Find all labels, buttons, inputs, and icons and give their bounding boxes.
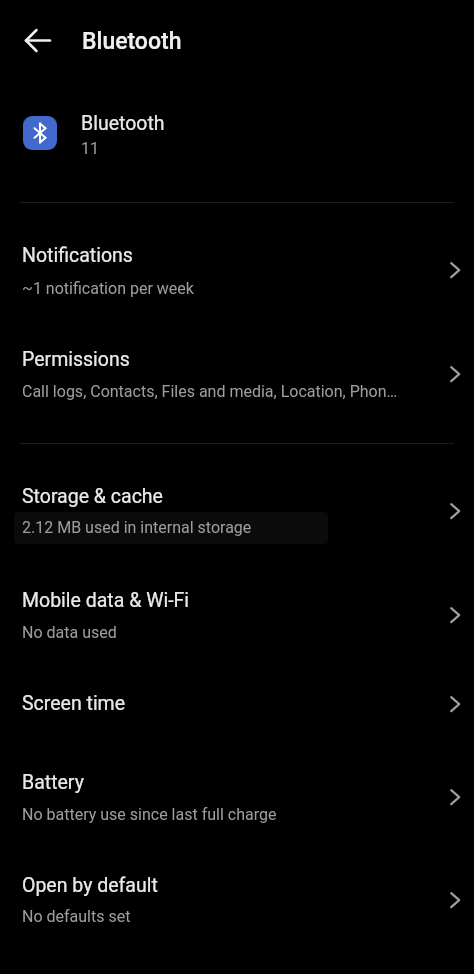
button[interactable]: Screen time xyxy=(0,674,474,740)
staticText: 11 xyxy=(81,139,99,158)
staticText: ~1 notification per week xyxy=(22,279,194,298)
button[interactable]: Notifications xyxy=(0,226,474,330)
staticText: Storage & cache xyxy=(22,485,163,508)
staticText: No data used xyxy=(22,623,117,642)
staticText: Call logs, Contacts, Files and media, Lo… xyxy=(22,382,398,401)
button[interactable]: Permissions xyxy=(0,330,474,434)
button[interactable]: Open by default xyxy=(0,856,474,960)
staticText: Bluetooth xyxy=(81,112,165,135)
button[interactable]: Storage & cache xyxy=(0,467,474,571)
staticText: Open by default xyxy=(22,874,158,897)
staticText: Notifications xyxy=(22,244,133,267)
staticText: 2.12 MB used in internal storage xyxy=(22,518,252,537)
staticText: Screen time xyxy=(22,692,126,715)
staticText: Permissions xyxy=(22,348,130,371)
staticText: Battery xyxy=(22,771,84,794)
staticText: No battery use since last full charge xyxy=(22,805,277,824)
staticText: No defaults set xyxy=(22,907,131,926)
button[interactable]: Mobile data & Wi-Fi xyxy=(0,571,474,675)
button[interactable] xyxy=(16,19,60,63)
button[interactable]: Battery xyxy=(0,753,474,857)
staticText: Mobile data & Wi-Fi xyxy=(22,589,190,612)
staticText: Bluetooth xyxy=(82,28,182,55)
button[interactable]: Bluetooth xyxy=(0,96,474,170)
